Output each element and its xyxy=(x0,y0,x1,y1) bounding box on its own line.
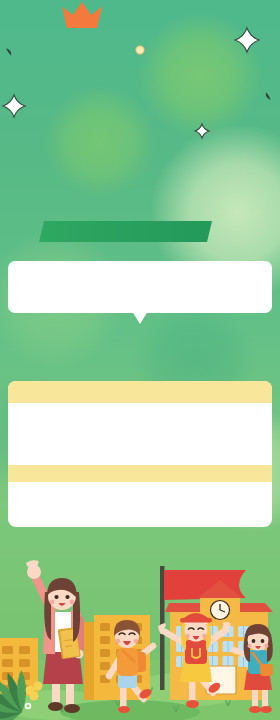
button[interactable]: Information card xyxy=(8,381,272,527)
button[interactable]: Announcement xyxy=(8,261,272,313)
